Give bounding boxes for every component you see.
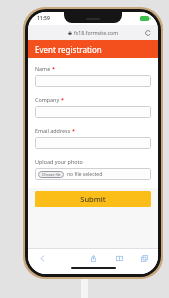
staticText: Upload your photo [35,158,83,165]
button[interactable] [35,137,151,149]
staticText: Event registration [35,44,102,55]
staticText: * [52,65,55,72]
staticText: 11:59 [37,15,50,22]
button[interactable]: Reload [143,28,152,37]
button[interactable]: Tabs [136,250,152,266]
button[interactable]: Share [85,250,101,266]
staticText: fs18.formsite.com [74,29,119,36]
button[interactable]: Back [34,250,50,266]
staticText: Submit [80,194,106,204]
button[interactable] [35,106,151,118]
button[interactable]: Submit [35,191,151,207]
staticText: Company [35,96,60,103]
staticText: no file selected [67,171,103,178]
staticText: * [72,127,75,134]
staticText: Choose file [42,172,61,177]
staticText: * [61,96,64,103]
staticText: Name [35,65,51,72]
button[interactable]: Choose file [38,171,64,178]
staticText: Email address [35,127,71,134]
button[interactable]: fs18.formsite.com [28,25,158,40]
button[interactable]: Bookmarks [111,250,127,266]
button[interactable] [35,75,151,87]
